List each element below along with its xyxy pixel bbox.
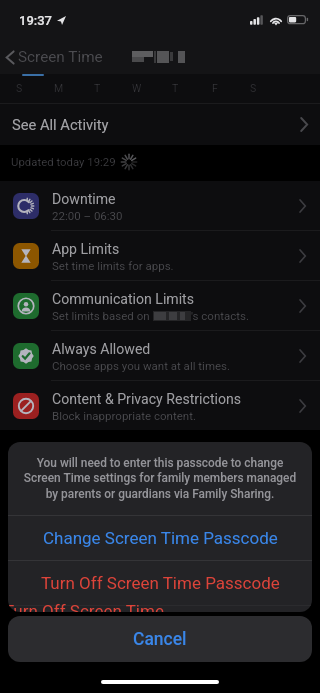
staticText: Turn Off Screen Time Passcode — [41, 573, 280, 593]
button[interactable]: Change Screen Time Passcode — [8, 515, 312, 560]
staticText: M — [54, 82, 64, 94]
staticText: S — [250, 82, 257, 94]
button[interactable]: Content & Privacy Restrictions — [0, 381, 320, 430]
staticText: Content & Privacy Restrictions — [52, 391, 242, 408]
button[interactable]: Turn Off Screen Time Passcode — [8, 560, 312, 605]
button[interactable]: Turn Off Screen Time — [8, 601, 308, 612]
staticText: Block inappropriate content. — [52, 409, 196, 422]
staticText: Communication Limits — [52, 291, 194, 308]
staticText: T — [172, 82, 179, 94]
staticText: W — [132, 82, 142, 94]
staticText: 19:37 — [19, 13, 52, 28]
staticText: See All Activity — [12, 116, 109, 133]
staticText: You will need to enter this passcode to … — [20, 456, 300, 501]
staticText: S — [16, 82, 23, 94]
button[interactable]: Communication Limits — [0, 281, 320, 330]
staticText: Always Allowed — [52, 341, 151, 358]
button[interactable]: App Limits — [0, 231, 320, 280]
staticText: F — [212, 82, 218, 94]
staticText: Choose apps you want at all times. — [52, 359, 231, 372]
staticText: App Limits — [52, 241, 120, 258]
staticText: T — [94, 82, 101, 94]
staticText: 's contacts. — [191, 309, 250, 322]
staticText: Change Screen Time Passcode — [43, 528, 278, 548]
staticText: Cancel — [133, 629, 187, 650]
staticText: 22:00 – 06:30 — [52, 209, 123, 222]
staticText: Downtime — [52, 191, 116, 208]
staticText: Set limits based on — [52, 309, 153, 322]
button[interactable]: See All Activity — [0, 104, 320, 145]
button[interactable]: Always Allowed — [0, 331, 320, 380]
button[interactable]: Downtime — [0, 181, 320, 230]
button[interactable]: Back — [3, 44, 104, 70]
button[interactable]: Cancel — [8, 616, 312, 662]
staticText: Set time limits for apps. — [52, 259, 174, 272]
staticText: Updated today 19:29 — [11, 155, 116, 168]
staticText: Turn Off Screen Time — [8, 601, 164, 612]
staticText: Screen Time — [18, 48, 103, 66]
